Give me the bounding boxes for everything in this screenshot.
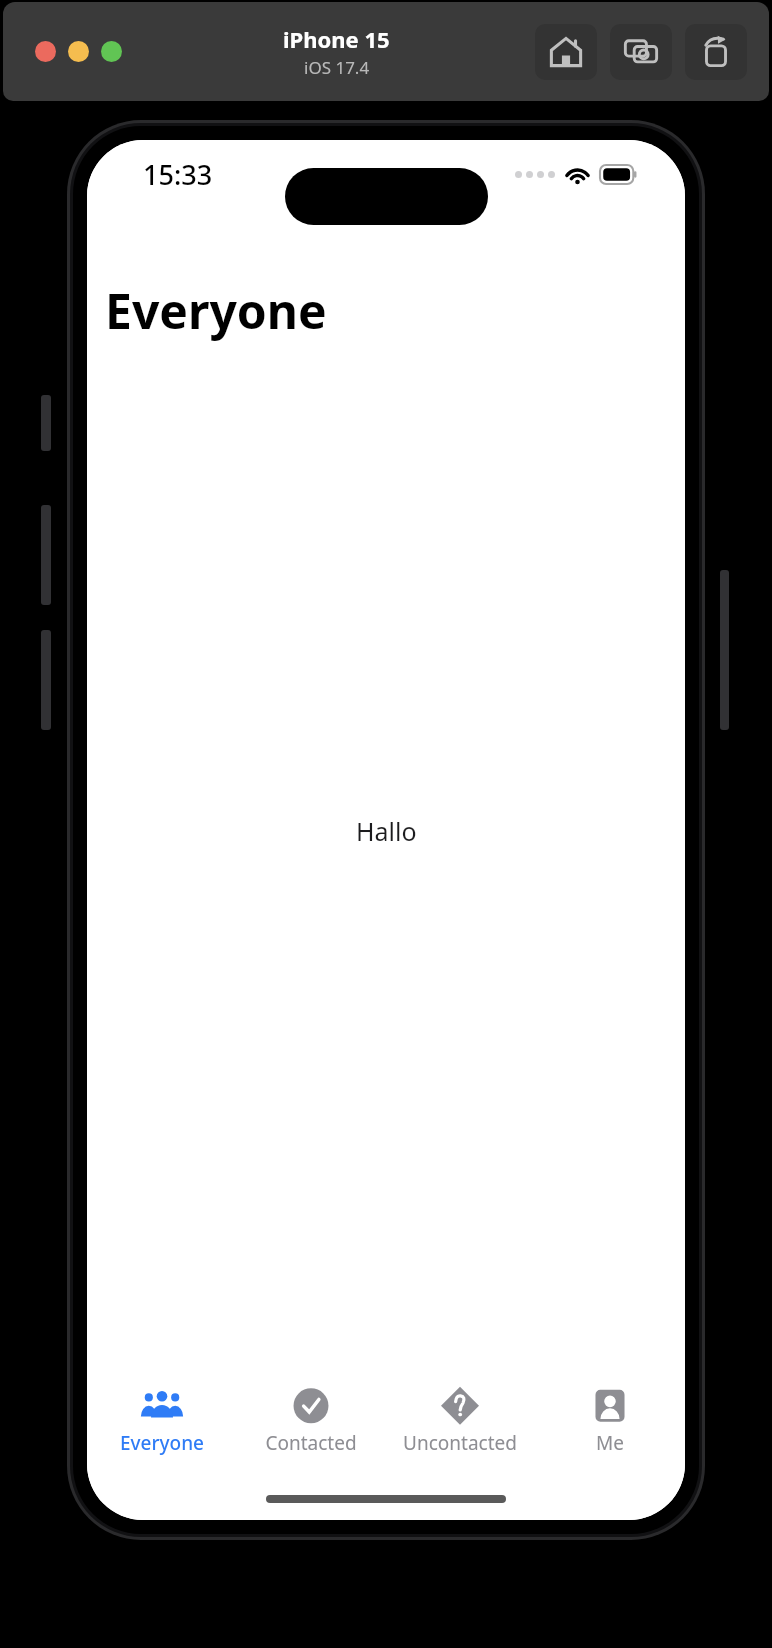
button[interactable]: Minimize [68, 41, 89, 62]
button[interactable]: Close [35, 41, 56, 62]
button[interactable]: Everyone [87, 1378, 236, 1474]
staticText: Me [596, 1430, 624, 1456]
staticText: 15:33 [143, 156, 213, 193]
button[interactable]: Home [535, 24, 597, 80]
staticText: Everyone [120, 1430, 204, 1456]
staticText: iOS 17.4 [304, 56, 370, 79]
staticText: Uncontacted [403, 1430, 517, 1456]
button[interactable]: Maximize [101, 41, 122, 62]
staticText: iPhone 15 [283, 24, 390, 54]
button[interactable]: Rotate [685, 24, 747, 80]
button[interactable]: Me [535, 1378, 685, 1474]
staticText: Hallo [356, 814, 417, 848]
staticText: Everyone [105, 278, 327, 343]
button[interactable]: Contacted [236, 1378, 385, 1474]
button[interactable]: Screenshot [610, 24, 672, 80]
staticText: Contacted [265, 1430, 357, 1456]
button[interactable]: Uncontacted [385, 1378, 535, 1474]
